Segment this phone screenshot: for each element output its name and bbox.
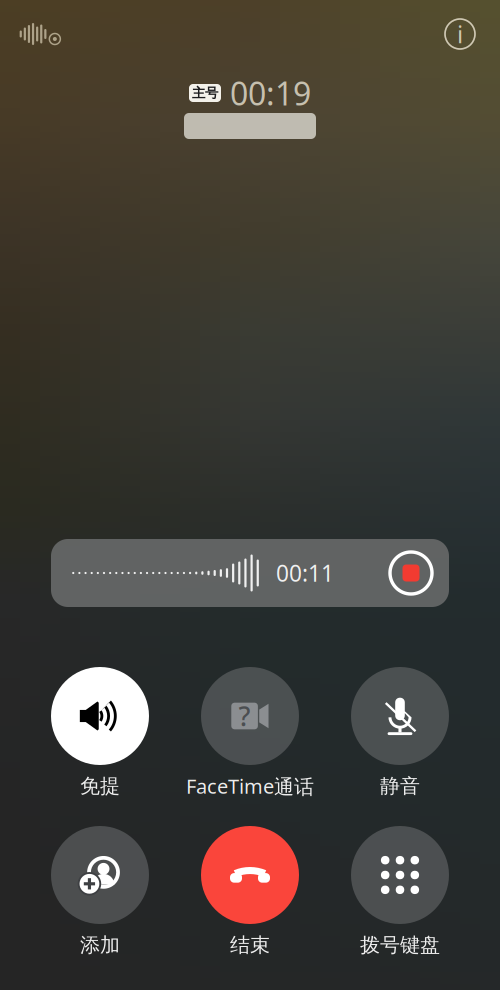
staticText: 静音	[380, 774, 420, 798]
button[interactable]: Call info	[442, 16, 478, 52]
staticText: 结束	[230, 933, 270, 957]
button[interactable]: 免提	[25, 667, 175, 801]
staticText: FaceTime通话	[186, 773, 314, 799]
button[interactable]: ?	[175, 667, 325, 801]
staticText: 添加	[80, 933, 120, 957]
staticText: ?	[239, 698, 251, 734]
staticText: 免提	[80, 774, 120, 798]
button[interactable]: 静音	[325, 667, 475, 801]
staticText: 00:11	[276, 558, 334, 588]
button[interactable]: 结束	[175, 826, 325, 960]
staticText: 00:19	[230, 72, 311, 114]
button[interactable]: 添加	[25, 826, 175, 960]
button[interactable]: Stop recording	[383, 545, 439, 601]
staticText: 主号	[192, 85, 218, 101]
button[interactable]: 拨号键盘	[325, 826, 475, 960]
staticText: i	[457, 18, 463, 50]
staticText: 拨号键盘	[360, 933, 440, 957]
